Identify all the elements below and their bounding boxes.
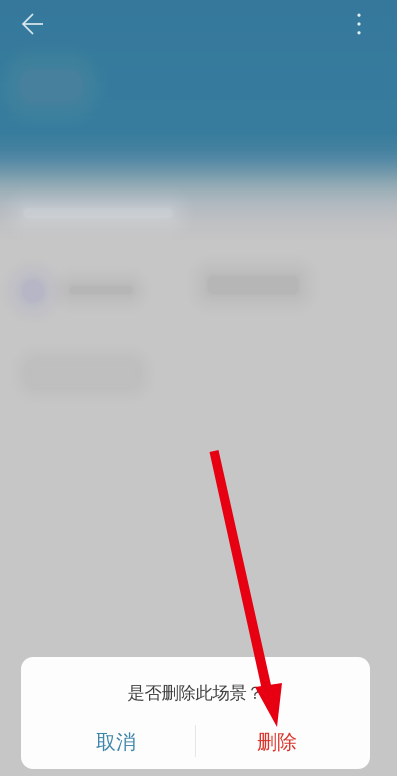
button[interactable]: Back xyxy=(11,2,55,46)
button[interactable]: 取消 xyxy=(29,716,203,768)
staticText: 是否删除此场景？ xyxy=(127,682,263,704)
button[interactable]: More options xyxy=(337,2,381,46)
staticText: 删除 xyxy=(257,730,297,754)
button[interactable]: 删除 xyxy=(190,716,364,768)
staticText: 取消 xyxy=(96,730,136,754)
